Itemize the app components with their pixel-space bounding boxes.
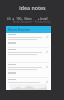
button[interactable]: Edit note <box>6 33 51 48</box>
button[interactable]: Edit note <box>45 80 49 84</box>
staticText: ▸ Install <box>38 17 48 20</box>
button[interactable]: Edit note <box>6 48 51 63</box>
staticText: idea notes <box>19 4 46 11</box>
button[interactable]: Edit note <box>45 50 49 54</box>
button[interactable]: Edit note <box>45 35 49 39</box>
staticText: Notes Browser • Productivity <box>13 20 51 24</box>
staticText: Notes Browser <box>8 28 31 32</box>
button[interactable]: Edit note <box>45 65 49 69</box>
staticText: 4.6 ★ 10K+ Notes <box>7 17 32 20</box>
button[interactable]: Edit note <box>6 63 51 78</box>
button[interactable]: Edit note <box>6 78 51 90</box>
button[interactable]: Notes Browser <box>6 26 51 33</box>
